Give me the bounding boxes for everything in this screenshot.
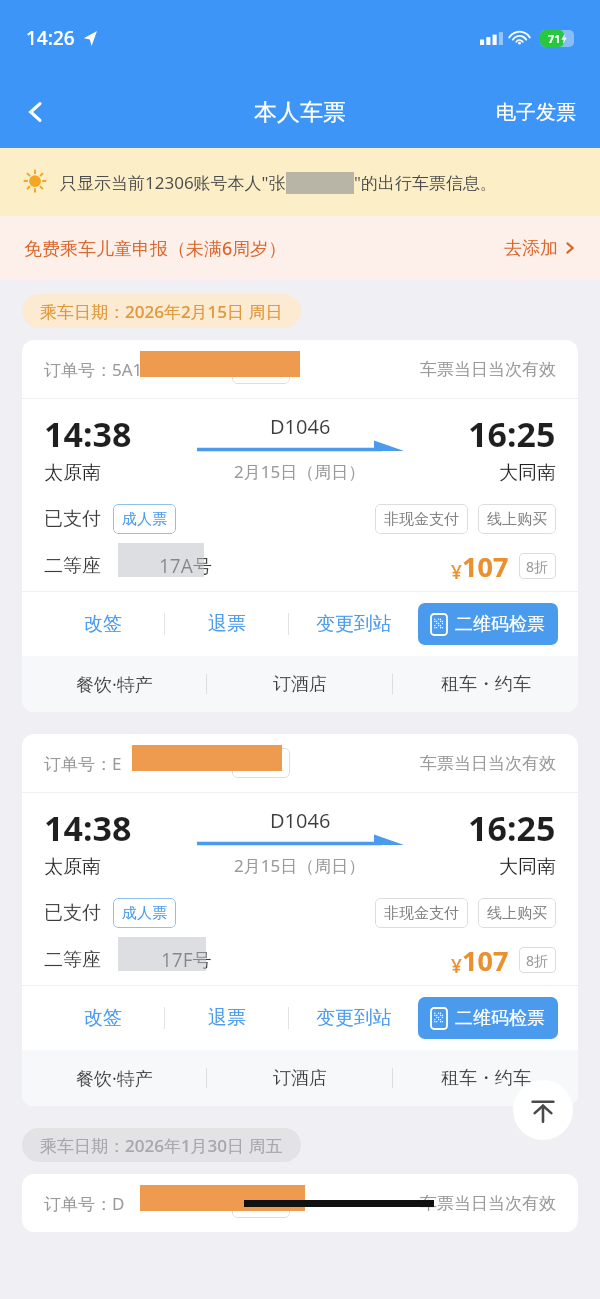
staticText: 太原南 bbox=[44, 855, 101, 879]
staticText: 二等座 bbox=[44, 948, 101, 972]
staticText: 餐饮·特产 bbox=[76, 1066, 153, 1091]
button[interactable]: 退票 bbox=[165, 986, 288, 1050]
button[interactable]: 复制 bbox=[232, 748, 290, 778]
staticText: 已支付 bbox=[44, 507, 101, 531]
staticText: 本人车票 bbox=[254, 98, 346, 127]
button[interactable]: 订单号：5A1 bbox=[22, 340, 578, 712]
staticText: 已支付 bbox=[44, 901, 101, 925]
staticText: 退票 bbox=[208, 1006, 246, 1030]
staticText: 非现金支付 bbox=[384, 904, 459, 923]
staticText: 车票当日当次有效 bbox=[420, 359, 556, 380]
staticText: 二维码检票 bbox=[455, 613, 545, 636]
staticText: ¥ bbox=[451, 559, 462, 585]
staticText: 71 bbox=[548, 31, 561, 46]
staticText: 订酒店 bbox=[273, 673, 327, 696]
button[interactable]: 复制 bbox=[232, 1188, 290, 1218]
staticText: 改签 bbox=[84, 1006, 122, 1030]
staticText: 非现金支付 bbox=[384, 510, 459, 529]
staticText: 订单号：5A1 bbox=[44, 358, 143, 381]
button[interactable]: 餐饮·特产 bbox=[22, 1050, 206, 1106]
staticText: 租车・约车 bbox=[441, 673, 531, 696]
staticText: 乘车日期：2026年2月15日 周日 bbox=[40, 300, 283, 323]
staticText: 订单号：D bbox=[44, 1192, 125, 1215]
staticText: 14:38 bbox=[44, 805, 132, 851]
button[interactable]: 订酒店 bbox=[207, 1050, 392, 1106]
button[interactable]: 订单号：E bbox=[22, 734, 578, 1106]
staticText: D1046 bbox=[270, 807, 331, 834]
staticText: 车票当日当次有效 bbox=[420, 753, 556, 774]
staticText: 2月15日（周日） bbox=[234, 460, 366, 483]
staticText: 二维码检票 bbox=[455, 1007, 545, 1030]
button[interactable]: 免费乘车儿童申报（未满6周岁） bbox=[0, 216, 600, 280]
staticText: 餐饮·特产 bbox=[76, 672, 153, 697]
staticText: 107 bbox=[462, 548, 509, 585]
button[interactable]: 复制 bbox=[232, 354, 290, 384]
button[interactable]: Back bbox=[0, 76, 72, 148]
staticText: 成人票 bbox=[122, 904, 167, 923]
staticText: 2月15日（周日） bbox=[234, 854, 366, 877]
staticText: 变更到站 bbox=[316, 612, 392, 636]
staticText: 复制 bbox=[247, 1194, 275, 1212]
staticText: 只显示当前12306账号本人"张 bbox=[60, 171, 286, 194]
staticText: 17A号 bbox=[159, 553, 212, 579]
staticText: 复制 bbox=[247, 754, 275, 772]
staticText: 订单号：E bbox=[44, 752, 122, 775]
staticText: 大同南 bbox=[499, 461, 556, 485]
staticText: 线上购买 bbox=[487, 510, 547, 529]
button[interactable]: 订单号：D bbox=[22, 1174, 578, 1232]
staticText: 17F号 bbox=[161, 947, 212, 973]
button[interactable]: 订酒店 bbox=[207, 656, 392, 712]
staticText: D1046 bbox=[270, 413, 331, 440]
staticText: 变更到站 bbox=[316, 1006, 392, 1030]
staticText: 改签 bbox=[84, 612, 122, 636]
staticText: 太原南 bbox=[44, 461, 101, 485]
staticText: 14:38 bbox=[44, 411, 132, 457]
staticText: 电子发票 bbox=[496, 100, 576, 125]
button[interactable]: 变更到站 bbox=[289, 986, 418, 1050]
button[interactable]: 变更到站 bbox=[289, 592, 418, 656]
staticText: 14:26 bbox=[26, 25, 75, 51]
staticText: 成人票 bbox=[122, 510, 167, 529]
staticText: 乘车日期：2026年1月30日 周五 bbox=[40, 1134, 283, 1157]
button[interactable]: 二维码检票 bbox=[418, 603, 558, 645]
staticText: 车票当日当次有效 bbox=[420, 1193, 556, 1214]
staticText: 免费乘车儿童申报（未满6周岁） bbox=[24, 236, 287, 261]
button[interactable]: 改签 bbox=[42, 592, 164, 656]
button[interactable]: 电子发票 bbox=[472, 76, 600, 148]
button[interactable]: 二维码检票 bbox=[418, 997, 558, 1039]
staticText: 107 bbox=[462, 942, 509, 979]
button[interactable]: 餐饮·特产 bbox=[22, 656, 206, 712]
staticText: 16:25 bbox=[468, 411, 556, 457]
staticText: 订酒店 bbox=[273, 1067, 327, 1090]
staticText: 退票 bbox=[208, 612, 246, 636]
button[interactable]: 退票 bbox=[165, 592, 288, 656]
staticText: 大同南 bbox=[499, 855, 556, 879]
staticText: "的出行车票信息。 bbox=[354, 171, 497, 194]
staticText: 复制 bbox=[247, 360, 275, 378]
button[interactable]: 租车・约车 bbox=[393, 656, 578, 712]
staticText: 租车・约车 bbox=[441, 1067, 531, 1090]
button[interactable]: 改签 bbox=[42, 986, 164, 1050]
staticText: 去添加 bbox=[504, 237, 558, 260]
button[interactable]: Scroll to top bbox=[513, 1080, 573, 1140]
staticText: 8折 bbox=[526, 557, 549, 576]
staticText: 8折 bbox=[526, 951, 549, 970]
staticText: 线上购买 bbox=[487, 904, 547, 923]
button[interactable]: 租车・约车 bbox=[393, 1050, 578, 1106]
staticText: 二等座 bbox=[44, 554, 101, 578]
staticText: ¥ bbox=[451, 953, 462, 979]
staticText: 16:25 bbox=[468, 805, 556, 851]
